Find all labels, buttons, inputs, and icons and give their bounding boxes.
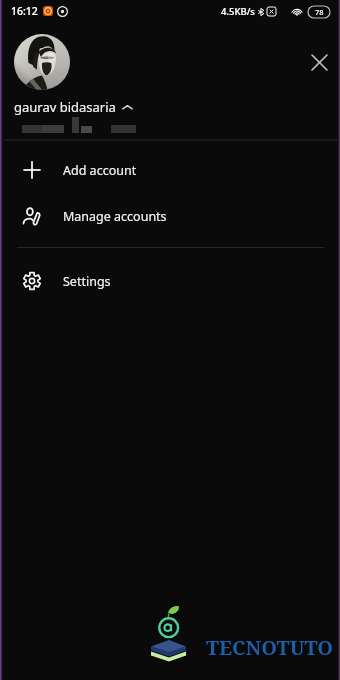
staticText: 16:12 [11,4,38,18]
staticText: Add account [63,162,137,179]
staticText: gaurav bidasaria [14,98,116,116]
button[interactable]: Close [302,45,336,79]
staticText: Settings [63,273,111,290]
button[interactable]: Settings [0,258,340,304]
button[interactable]: gaurav bidasaria [14,98,133,116]
button[interactable]: Profile photo [14,34,70,90]
staticText: 78 [315,7,324,17]
staticText: 4.5KB/s [221,5,255,18]
button[interactable]: Manage accounts [0,193,340,239]
staticText: Manage accounts [63,208,167,225]
button[interactable]: Add account [0,147,340,193]
staticText: TECNOTUTO [206,634,333,661]
